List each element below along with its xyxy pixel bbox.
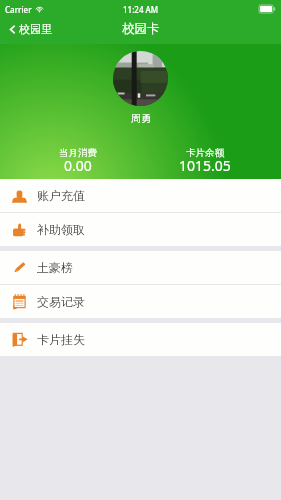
button[interactable]: 卡片挂失 <box>0 323 281 356</box>
button[interactable]: 土豪榜 <box>0 251 281 284</box>
staticText: 当月消费 <box>59 147 97 159</box>
staticText: 卡片余额 <box>186 147 224 159</box>
staticText: 土豪榜 <box>37 260 73 275</box>
staticText: 11:24 AM <box>123 4 159 15</box>
staticText: 交易记录 <box>37 294 85 309</box>
staticText: 周勇 <box>131 112 151 125</box>
staticText: 校园卡 <box>122 21 160 37</box>
button[interactable]: 补助领取 <box>0 213 281 246</box>
button[interactable]: 校园里 <box>5 20 54 38</box>
staticText: 0.00 <box>64 156 92 175</box>
staticText: 卡片挂失 <box>37 332 85 347</box>
staticText: 账户充值 <box>37 188 85 203</box>
button[interactable]: 账户充值 <box>0 179 281 212</box>
staticText: 补助领取 <box>37 222 85 237</box>
button[interactable]: 交易记录 <box>0 285 281 318</box>
staticText: Carrier <box>5 4 32 15</box>
staticText: 1015.05 <box>179 156 231 175</box>
staticText: 校园里 <box>19 22 52 36</box>
